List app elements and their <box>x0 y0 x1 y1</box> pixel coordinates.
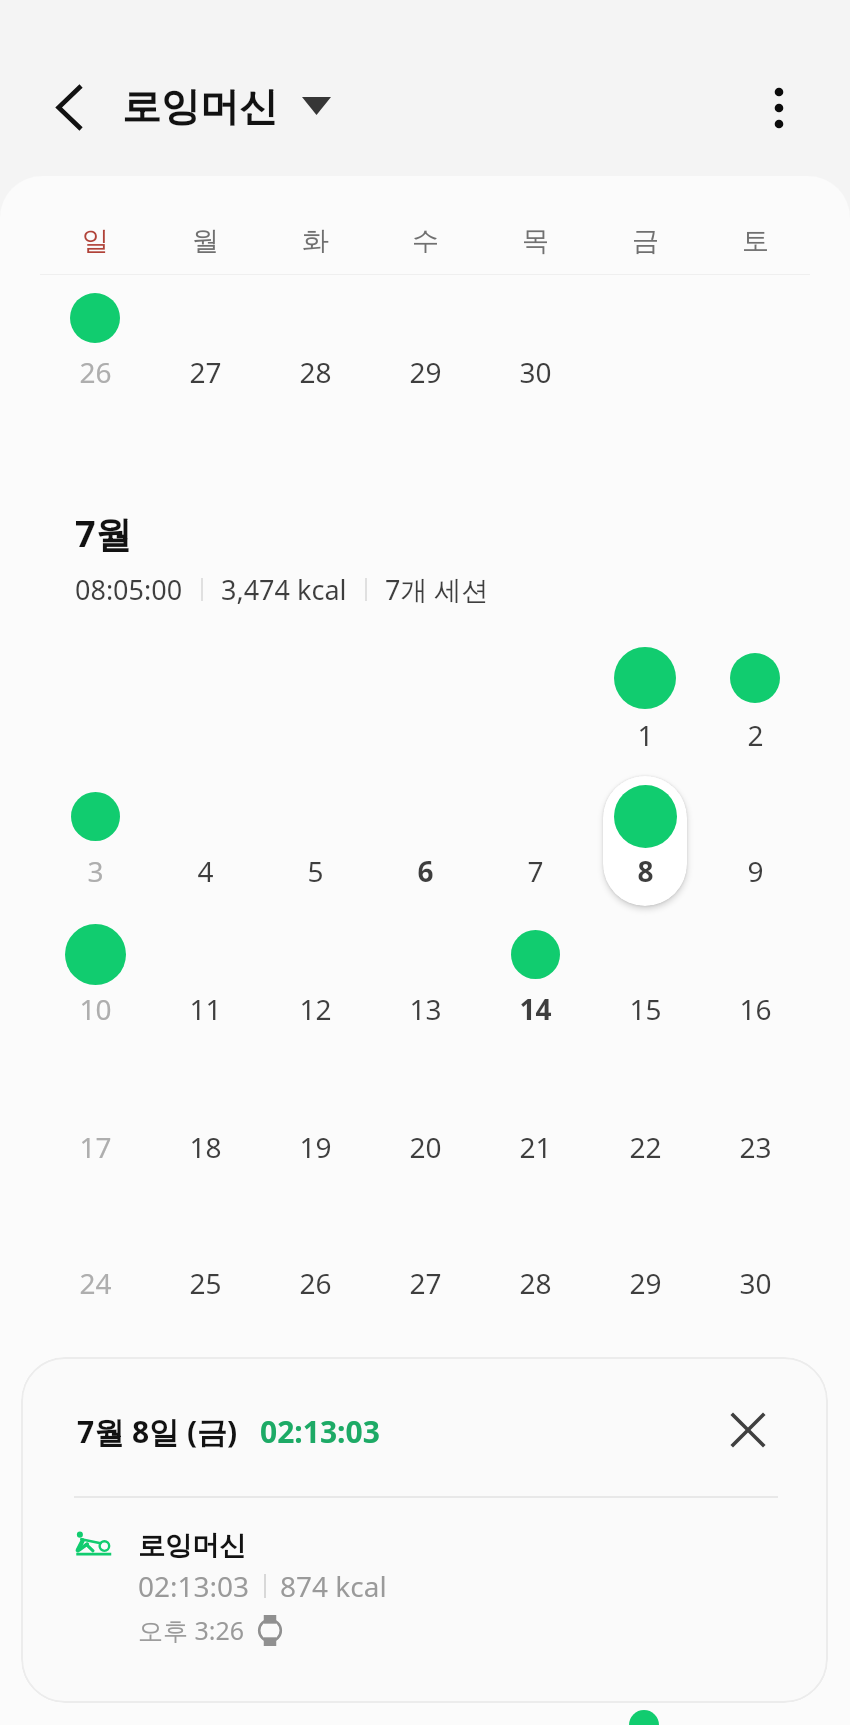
button[interactable]: 23 <box>700 1032 810 1168</box>
staticText: 월 <box>192 224 219 258</box>
staticText: 수 <box>412 224 439 258</box>
staticText: 목 <box>522 224 549 258</box>
staticText: 10 <box>79 990 112 1028</box>
staticText: 29 <box>409 353 442 391</box>
staticText: 874 kcal <box>280 1567 387 1605</box>
staticText: 23 <box>739 1128 772 1166</box>
button[interactable]: 14 <box>480 894 590 1030</box>
staticText: 화 <box>302 224 329 258</box>
staticText: 24 <box>79 1264 112 1302</box>
button[interactable]: 토 <box>700 216 810 266</box>
staticText: 21 <box>519 1128 552 1166</box>
staticText: 3 <box>87 852 104 890</box>
button[interactable]: 7 <box>480 756 590 892</box>
button[interactable]: 29 <box>370 258 480 394</box>
staticText: 일 <box>82 224 109 258</box>
staticText: 토 <box>742 224 769 258</box>
button[interactable]: 6 <box>370 756 480 892</box>
staticText: 26 <box>299 1264 332 1302</box>
staticText: 18 <box>189 1128 222 1166</box>
staticText: 22 <box>629 1128 662 1166</box>
button[interactable]: 5 <box>260 756 370 892</box>
staticText: 30 <box>739 1264 772 1302</box>
staticText: 7월 <box>75 509 132 558</box>
button[interactable]: 27 <box>370 1168 480 1304</box>
button[interactable]: 목 <box>480 216 590 266</box>
button[interactable]: 9 <box>700 756 810 892</box>
staticText: 6 <box>417 852 434 890</box>
button[interactable]: 25 <box>150 1168 260 1304</box>
button[interactable]: 19 <box>260 1032 370 1168</box>
button[interactable]: 1 <box>590 618 700 754</box>
button[interactable]: 22 <box>590 1032 700 1168</box>
button[interactable]: 26 <box>40 258 150 394</box>
staticText: 14 <box>519 990 552 1028</box>
staticText: 1 <box>637 716 654 754</box>
button[interactable]: 30 <box>700 1168 810 1304</box>
staticText: 12 <box>299 990 332 1028</box>
button[interactable]: 28 <box>260 258 370 394</box>
button[interactable]: 24 <box>40 1168 150 1304</box>
staticText: 17 <box>79 1128 112 1166</box>
staticText: 8 <box>637 852 654 890</box>
button[interactable]: 화 <box>260 216 370 266</box>
button[interactable]: 로잉머신 <box>122 62 331 150</box>
staticText: 27 <box>409 1264 442 1302</box>
staticText: 로잉머신 <box>138 1529 246 1563</box>
button[interactable]: 3 <box>40 756 150 892</box>
staticText: 25 <box>189 1264 222 1302</box>
button[interactable]: Back <box>29 67 109 147</box>
button[interactable]: 15 <box>590 894 700 1030</box>
button[interactable]: 26 <box>260 1168 370 1304</box>
button[interactable]: 월 <box>150 216 260 266</box>
staticText: 7월 8일 (금) <box>77 1411 238 1452</box>
staticText: 26 <box>79 353 112 391</box>
staticText: 02:13:03 <box>138 1567 250 1605</box>
button[interactable]: 27 <box>150 258 260 394</box>
staticText: 02:13:03 <box>260 1411 380 1452</box>
button[interactable]: Close <box>708 1390 788 1470</box>
staticText: 20 <box>409 1128 442 1166</box>
staticText: 7개 세션 <box>385 571 489 608</box>
button[interactable]: 20 <box>370 1032 480 1168</box>
staticText: 7 <box>527 852 544 890</box>
button[interactable]: 4 <box>150 756 260 892</box>
button[interactable]: 16 <box>700 894 810 1030</box>
staticText: 16 <box>739 990 772 1028</box>
button[interactable]: 수 <box>370 216 480 266</box>
staticText: 11 <box>189 990 222 1028</box>
button[interactable]: 13 <box>370 894 480 1030</box>
button[interactable]: 2 <box>700 618 810 754</box>
button[interactable]: More options <box>739 68 819 148</box>
button[interactable]: 로잉머신 <box>21 1511 828 1691</box>
staticText: 오후 3:26 <box>138 1613 245 1647</box>
staticText: 5 <box>307 852 324 890</box>
staticText: 로잉머신 <box>122 82 278 131</box>
button[interactable]: 21 <box>480 1032 590 1168</box>
staticText: 2 <box>747 716 764 754</box>
staticText: 28 <box>299 353 332 391</box>
staticText: 29 <box>629 1264 662 1302</box>
staticText: 9 <box>747 852 764 890</box>
button[interactable]: 12 <box>260 894 370 1030</box>
staticText: 15 <box>629 990 662 1028</box>
button[interactable]: 10 <box>40 894 150 1030</box>
staticText: 28 <box>519 1264 552 1302</box>
staticText: 19 <box>299 1128 332 1166</box>
staticText: 08:05:00 <box>75 571 183 608</box>
staticText: 27 <box>189 353 222 391</box>
staticText: 금 <box>632 224 659 258</box>
staticText: 13 <box>409 990 442 1028</box>
button[interactable]: 금 <box>590 216 700 266</box>
button[interactable]: 29 <box>590 1168 700 1304</box>
button[interactable]: 8 <box>590 756 700 892</box>
button[interactable]: 28 <box>480 1168 590 1304</box>
staticText: 30 <box>519 353 552 391</box>
button[interactable]: 일 <box>40 216 150 266</box>
staticText: 4 <box>197 852 214 890</box>
staticText: 3,474 kcal <box>221 571 347 608</box>
button[interactable]: 30 <box>480 258 590 394</box>
button[interactable]: 17 <box>40 1032 150 1168</box>
button[interactable]: 18 <box>150 1032 260 1168</box>
button[interactable]: 11 <box>150 894 260 1030</box>
